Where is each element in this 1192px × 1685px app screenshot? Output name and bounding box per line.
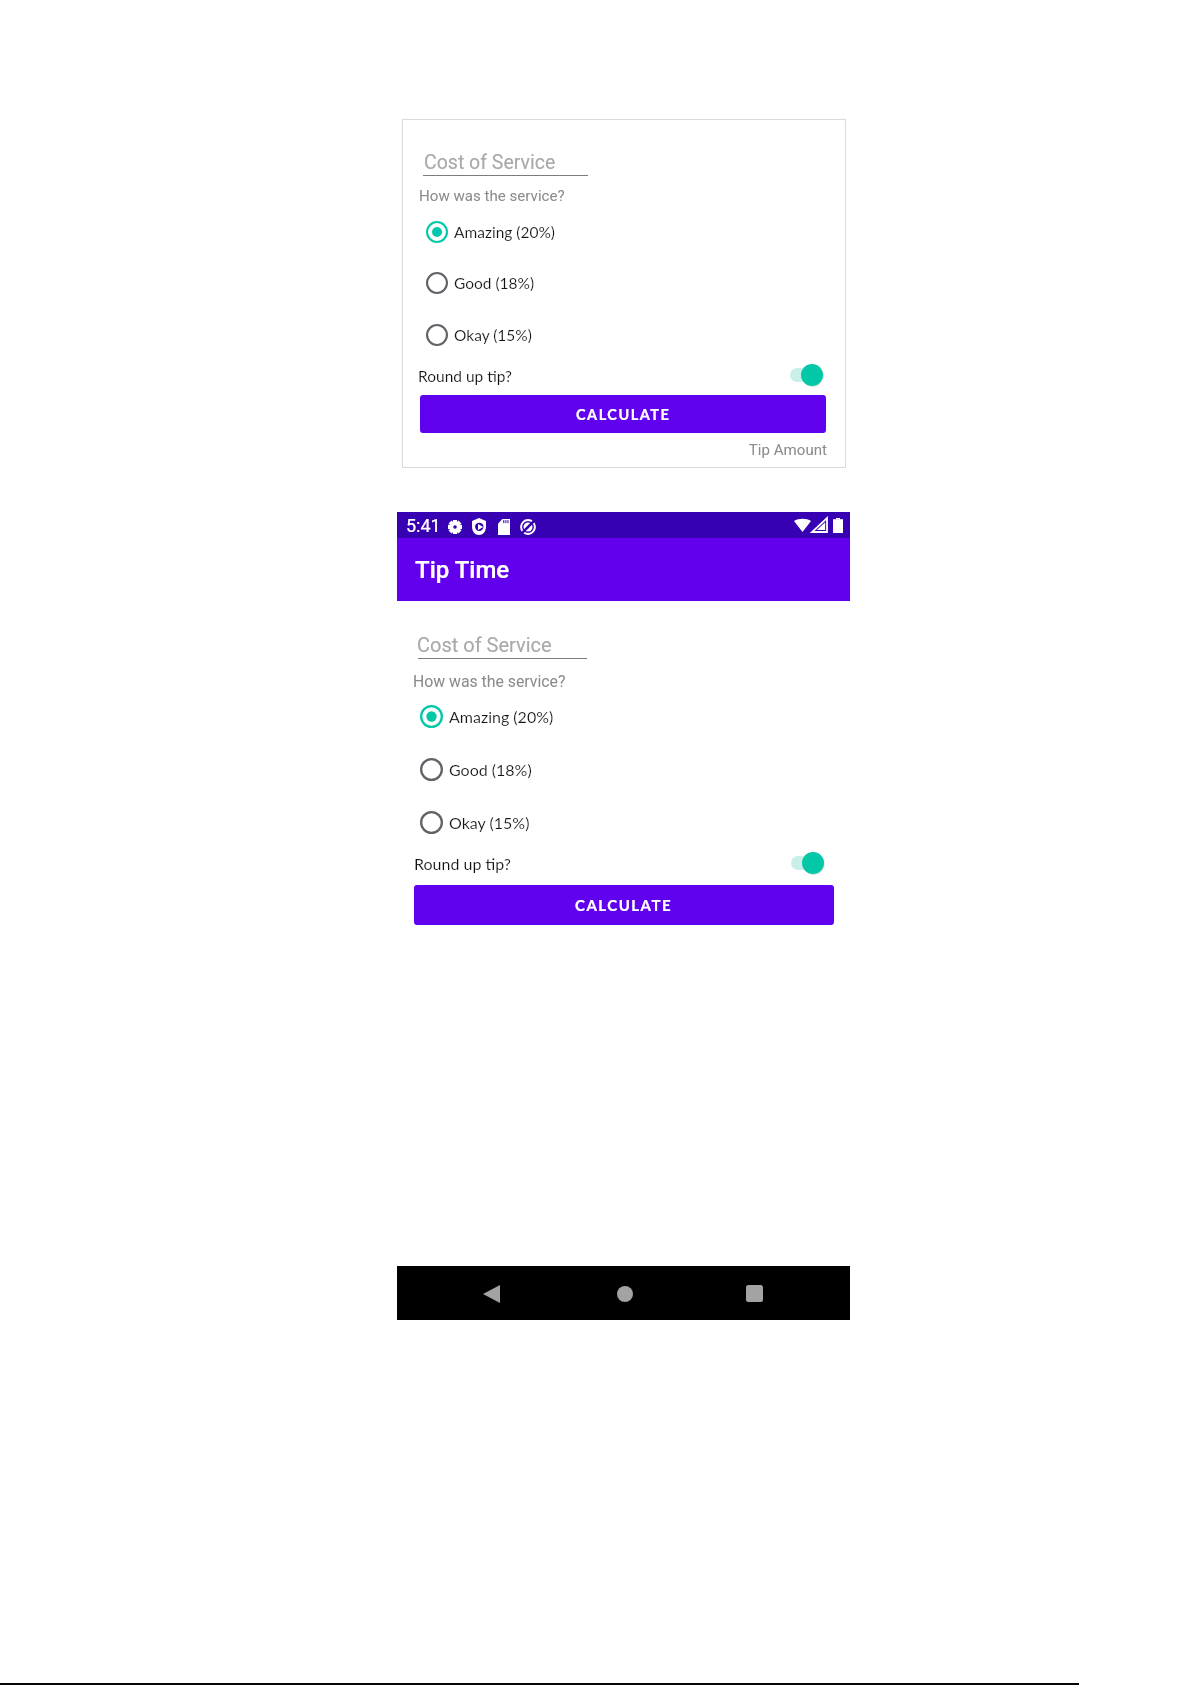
staticText: CALCULATE [575,896,673,914]
staticText: Amazing (20%) [449,707,554,726]
button[interactable]: Okay (15%) [426,323,616,347]
button[interactable]: Tip Time [397,538,850,601]
staticText: Okay (15%) [454,326,532,345]
button[interactable]: Amazing (20%) [426,220,616,244]
staticText: CALCULATE [576,406,671,423]
staticText: Tip Time [415,556,510,584]
staticText: Cost of Service [424,151,556,174]
staticText: Cost of Service [417,633,552,656]
button[interactable]: Good (18%) [420,758,620,781]
staticText: Round up tip? [418,367,512,386]
button[interactable]: Recent apps [729,1268,780,1319]
button[interactable]: Back [466,1268,517,1319]
button[interactable]: CALCULATE [420,395,826,433]
button[interactable]: Home [599,1268,650,1319]
staticText: How was the service? [419,187,565,205]
button[interactable]: Round up tip [791,851,824,875]
staticText: Tip Amount [402,441,827,459]
button[interactable]: Round up tip [790,363,823,387]
staticText: How was the service? [413,672,566,691]
staticText: Round up tip? [414,854,511,873]
button[interactable]: Amazing (20%) [420,705,620,728]
staticText: Amazing (20%) [454,223,555,242]
button[interactable]: Good (18%) [426,271,616,295]
button[interactable]: CALCULATE [414,885,834,925]
button[interactable]: Okay (15%) [420,811,620,834]
staticText: Okay (15%) [449,813,530,832]
staticText: Good (18%) [449,760,532,779]
staticText: 5:41 [406,515,441,536]
staticText: Good (18%) [454,274,535,293]
